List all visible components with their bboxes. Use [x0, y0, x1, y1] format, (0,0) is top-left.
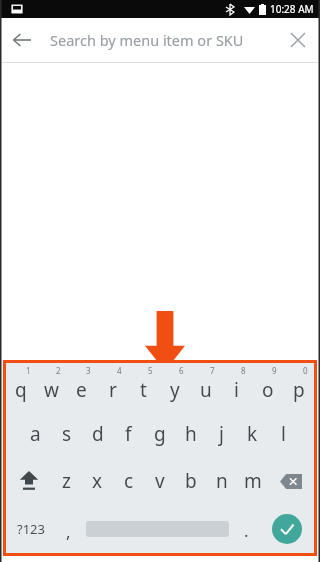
staticText: i: [234, 377, 239, 403]
button[interactable]: j: [206, 410, 237, 457]
button[interactable]: 1: [6, 363, 36, 410]
button[interactable]: Enter: [260, 505, 314, 553]
button[interactable]: 3: [66, 363, 97, 410]
staticText: s: [62, 421, 72, 447]
staticText: b: [185, 468, 197, 494]
button[interactable]: Space: [82, 505, 233, 553]
staticText: v: [155, 468, 165, 494]
staticText: h: [185, 421, 197, 447]
button[interactable]: 4: [97, 363, 128, 410]
staticText: .: [244, 519, 249, 542]
staticText: p: [293, 377, 305, 403]
button[interactable]: z: [51, 457, 82, 505]
staticText: 7: [210, 365, 215, 376]
staticText: n: [216, 468, 228, 494]
button[interactable]: a: [20, 410, 51, 457]
staticText: 8: [241, 365, 246, 376]
staticText: 1: [26, 365, 31, 376]
button[interactable]: 0: [283, 363, 314, 410]
staticText: l: [281, 421, 286, 447]
staticText: j: [219, 421, 224, 447]
staticText: o: [262, 377, 274, 403]
staticText: 9: [272, 365, 277, 376]
button[interactable]: f: [113, 410, 144, 457]
button[interactable]: k: [237, 410, 268, 457]
staticText: 6: [179, 365, 184, 376]
button[interactable]: Back: [0, 18, 44, 62]
button[interactable]: s: [51, 410, 82, 457]
staticText: r: [109, 377, 117, 403]
button[interactable]: 5: [128, 363, 159, 410]
staticText: 4: [117, 365, 122, 376]
staticText: ,: [66, 520, 71, 543]
button[interactable]: 6: [159, 363, 190, 410]
staticText: 2: [56, 365, 61, 376]
button[interactable]: 8: [221, 363, 252, 410]
button[interactable]: c: [113, 457, 144, 505]
staticText: m: [244, 468, 262, 494]
button[interactable]: l: [268, 410, 299, 457]
button[interactable]: Clear: [276, 18, 320, 62]
button[interactable]: ?123: [6, 505, 55, 553]
staticText: 10:28 AM: [270, 2, 314, 16]
button[interactable]: Search by menu item or SKU: [50, 30, 276, 50]
button[interactable]: v: [144, 457, 175, 505]
staticText: c: [124, 468, 134, 494]
button[interactable]: 7: [190, 363, 221, 410]
button[interactable]: m: [237, 457, 268, 505]
staticText: z: [62, 468, 71, 494]
staticText: d: [92, 421, 104, 447]
button[interactable]: ,: [55, 505, 82, 553]
staticText: f: [125, 421, 132, 447]
button[interactable]: b: [175, 457, 206, 505]
staticText: 3: [86, 365, 91, 376]
staticText: q: [15, 377, 27, 403]
button[interactable]: Shift: [6, 457, 51, 505]
staticText: g: [154, 421, 166, 447]
button[interactable]: g: [144, 410, 175, 457]
button[interactable]: 9: [252, 363, 283, 410]
button[interactable]: 2: [36, 363, 66, 410]
staticText: x: [92, 468, 103, 494]
staticText: 5: [148, 365, 153, 376]
staticText: ?123: [17, 520, 45, 538]
staticText: w: [44, 377, 59, 403]
staticText: 0: [303, 365, 308, 376]
button[interactable]: d: [82, 410, 113, 457]
staticText: a: [30, 421, 41, 447]
staticText: u: [200, 377, 212, 403]
button[interactable]: x: [82, 457, 113, 505]
staticText: e: [76, 377, 87, 403]
button[interactable]: h: [175, 410, 206, 457]
button[interactable]: .: [233, 505, 260, 553]
staticText: t: [140, 377, 147, 403]
staticText: y: [170, 377, 180, 403]
staticText: k: [247, 421, 258, 447]
button[interactable]: n: [206, 457, 237, 505]
button[interactable]: Backspace: [268, 457, 314, 505]
